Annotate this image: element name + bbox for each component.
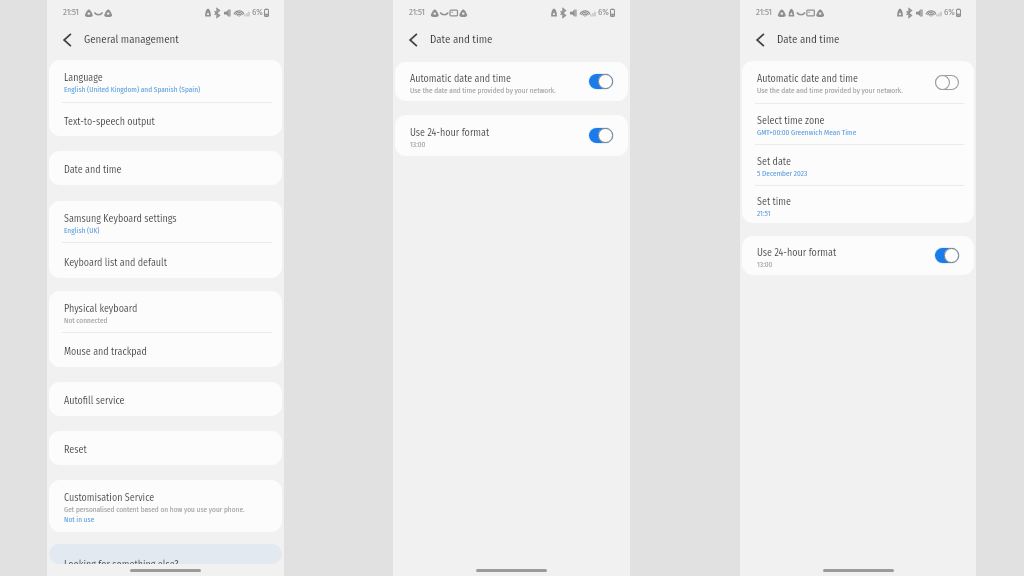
staticText: Physical keyboard	[64, 303, 138, 315]
staticText: Date and time	[777, 33, 840, 46]
staticText: Set time	[757, 196, 791, 208]
staticText: Reset	[64, 444, 87, 456]
staticText: Not in use	[64, 515, 95, 524]
staticText: 6%	[252, 7, 263, 18]
staticText: Mouse and trackpad	[64, 346, 147, 358]
button[interactable]: Automatic date and time	[395, 62, 628, 101]
button[interactable]: Mouse and trackpad	[49, 333, 282, 367]
staticText: Select time zone	[757, 115, 825, 127]
button[interactable]: Date and time	[49, 151, 282, 185]
staticText: 13:00	[757, 260, 773, 269]
staticText: Use the date and time provided by your n…	[410, 86, 556, 95]
button[interactable]: Text-to-speech output	[49, 103, 282, 136]
button[interactable]: Physical keyboard	[49, 291, 282, 332]
staticText: 21:51	[756, 7, 773, 18]
staticText: English (UK)	[64, 226, 100, 235]
staticText: Date and time	[64, 164, 122, 176]
button[interactable]: Toggle on	[589, 128, 613, 143]
staticText: GMT+00:00 Greenwich Mean Time	[757, 128, 857, 137]
staticText: Use 24-hour format	[757, 247, 837, 259]
staticText: Keyboard list and default	[64, 257, 167, 269]
staticText: Automatic date and time	[410, 73, 511, 85]
button[interactable]: Set date	[742, 145, 974, 185]
button[interactable]: Toggle on	[589, 74, 613, 89]
button[interactable]: Reset	[49, 431, 282, 465]
staticText: General management	[84, 33, 179, 46]
staticText: 21:51	[409, 7, 426, 18]
staticText: Get personalised content based on how yo…	[64, 505, 245, 514]
staticText: Samsung Keyboard settings	[64, 213, 177, 225]
staticText: 5 December 2023	[757, 169, 808, 178]
staticText: Use the date and time provided by your n…	[757, 86, 903, 95]
staticText: English (United Kingdom) and Spanish (Sp…	[64, 85, 201, 94]
button[interactable]: Samsung Keyboard settings	[49, 201, 282, 242]
button[interactable]: Customisation Service	[49, 480, 282, 532]
button[interactable]: Automatic date and time	[742, 61, 974, 103]
staticText: Autofill service	[64, 395, 125, 407]
button[interactable]: Set time	[742, 186, 974, 223]
button[interactable]: Toggle on	[935, 248, 959, 263]
staticText: 6%	[944, 7, 955, 18]
staticText: 21:51	[757, 209, 771, 218]
button[interactable]: Select time zone	[742, 104, 974, 144]
staticText: Date and time	[430, 33, 493, 46]
button[interactable]: Use 24-hour format	[742, 236, 974, 275]
staticText: 6%	[598, 7, 609, 18]
staticText: Customisation Service	[64, 492, 155, 504]
button[interactable]: Looking for something else?	[49, 544, 282, 564]
button[interactable]: Use 24-hour format	[395, 115, 628, 156]
button[interactable]: Back	[58, 30, 77, 49]
staticText: Language	[64, 72, 103, 84]
button[interactable]: Language	[49, 60, 282, 102]
staticText: Use 24-hour format	[410, 127, 490, 139]
button[interactable]: Back	[404, 30, 423, 49]
staticText: Set date	[757, 156, 791, 168]
staticText: Automatic date and time	[757, 73, 858, 85]
button[interactable]: Toggle off	[935, 75, 959, 90]
button[interactable]: Back	[751, 30, 770, 49]
button[interactable]: Autofill service	[49, 382, 282, 416]
button[interactable]: Keyboard list and default	[49, 243, 282, 278]
staticText: Looking for something else?	[64, 559, 179, 564]
staticText: Not connected	[64, 316, 108, 325]
staticText: 21:51	[63, 7, 80, 18]
staticText: Text-to-speech output	[64, 116, 155, 128]
staticText: 13:00	[410, 140, 426, 149]
